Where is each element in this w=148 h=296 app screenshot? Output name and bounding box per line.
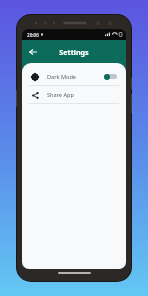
staticText: Settings (59, 47, 89, 57)
staticText: Dark Mode (47, 73, 77, 81)
button[interactable]: Back (25, 44, 40, 59)
button[interactable]: Dark Mode (22, 68, 126, 85)
staticText: Share App (47, 91, 74, 99)
staticText: 20:06 (27, 32, 39, 38)
button[interactable]: Share App (22, 86, 126, 103)
button[interactable]: Dark Mode toggle (104, 73, 117, 80)
